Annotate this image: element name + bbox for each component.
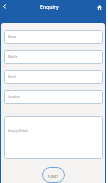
staticText: Name xyxy=(8,35,17,39)
button[interactable]: SUBMIT xyxy=(42,167,65,183)
staticText: Location xyxy=(8,95,20,99)
staticText: Email xyxy=(8,75,16,79)
staticText: Enquiry xyxy=(40,4,59,11)
button[interactable]: Back xyxy=(0,1,10,12)
button[interactable]: Mobile xyxy=(4,50,103,64)
button[interactable]: Email xyxy=(4,70,103,84)
button[interactable]: Location xyxy=(4,90,103,104)
staticText: SUBMIT xyxy=(48,175,59,179)
button[interactable]: Name xyxy=(4,30,103,44)
button[interactable]: Enquiry Details xyxy=(4,116,103,159)
staticText: Mobile xyxy=(8,55,18,59)
staticText: Enquiry Details xyxy=(8,129,29,133)
button[interactable]: Home xyxy=(94,2,105,13)
